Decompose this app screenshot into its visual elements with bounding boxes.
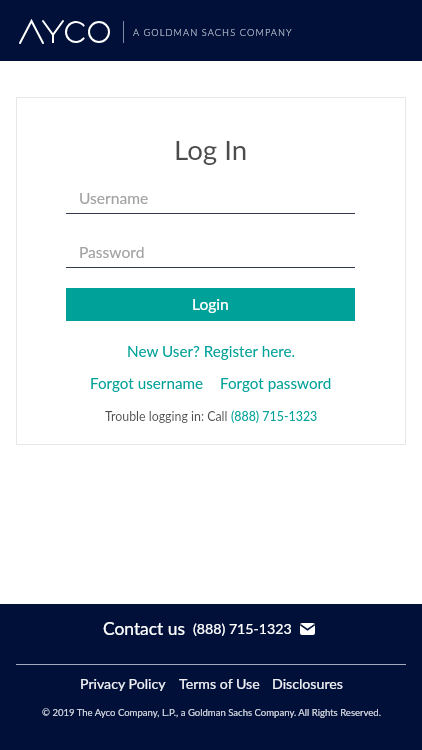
staticText: © 2019 The Ayco Company, L.P., a Goldman… xyxy=(42,707,381,718)
staticText: Privacy Policy xyxy=(80,675,166,692)
staticText: Forgot password xyxy=(220,374,332,392)
button[interactable]: Privacy Policy xyxy=(80,675,166,692)
button[interactable]: (888) 715-1323 xyxy=(193,620,292,637)
staticText: Terms of Use xyxy=(179,675,260,692)
staticText: Username xyxy=(79,189,149,208)
staticText: Forgot username xyxy=(90,374,204,392)
button[interactable]: Forgot password xyxy=(220,374,332,392)
button[interactable]: Email us xyxy=(300,623,315,635)
button[interactable]: Login xyxy=(66,288,355,321)
staticText: Password xyxy=(79,243,145,262)
button[interactable]: Forgot username xyxy=(90,374,204,392)
staticText: New User? Register here. xyxy=(127,342,296,360)
staticText: A GOLDMAN SACHS COMPANY xyxy=(133,27,293,38)
button[interactable]: (888) 715-1323 xyxy=(231,409,318,424)
staticText: Contact us xyxy=(103,618,185,639)
staticText: Disclosures xyxy=(272,675,343,692)
staticText: Log In xyxy=(174,133,248,166)
staticText: (888) 715-1323 xyxy=(231,409,318,424)
staticText: (888) 715-1323 xyxy=(193,620,292,637)
button[interactable]: Disclosures xyxy=(272,675,343,692)
staticText: Trouble logging in: Call xyxy=(105,409,231,424)
staticText: Login xyxy=(192,295,229,314)
button[interactable]: Terms of Use xyxy=(179,675,260,692)
button[interactable]: New User? Register here. xyxy=(127,342,296,360)
